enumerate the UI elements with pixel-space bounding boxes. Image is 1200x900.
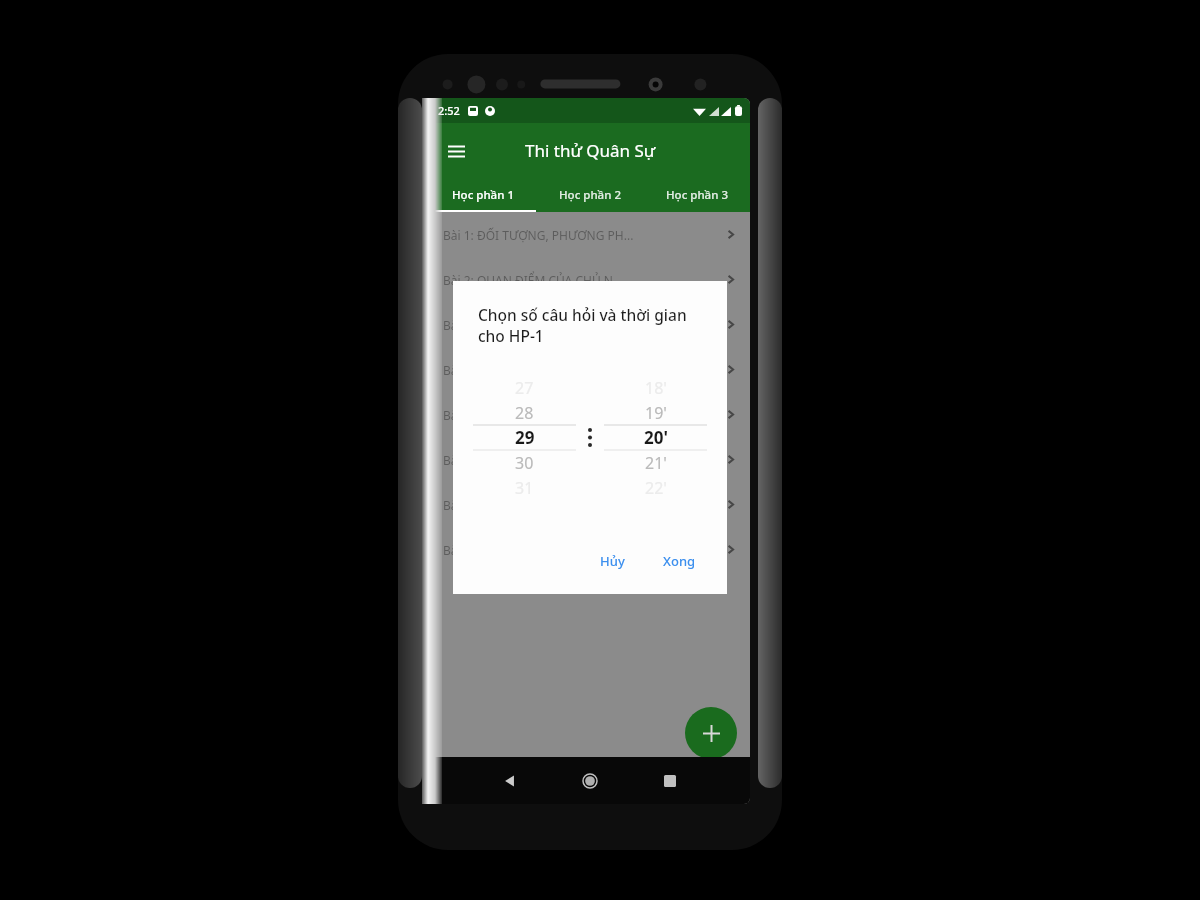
- staticText: 2:52: [438, 103, 460, 118]
- button[interactable]: Học phần 3: [643, 178, 750, 212]
- button[interactable]: Bài 3: XÂY DỰNG NỀN QUỐC P...: [430, 302, 750, 347]
- button[interactable]: Back: [470, 757, 550, 804]
- button[interactable]: Học phần 2: [536, 178, 643, 212]
- staticText: 21': [645, 452, 667, 474]
- staticText: Bài 3: XÂY DỰNG NỀN QUỐC P...: [443, 317, 622, 333]
- button[interactable]: Bài 8: PHÒNG CHỐNG CHIẾN...: [430, 527, 750, 572]
- staticText: 30: [515, 452, 534, 474]
- button[interactable]: Bài 6: KẾT HỢP PHÁT TRIỂN...: [430, 437, 750, 482]
- button[interactable]: Bài 5: XÂY DỰNG LỰC LƯỢNG...: [430, 392, 750, 437]
- button[interactable]: Open navigation menu: [436, 131, 476, 171]
- staticText: 22': [645, 477, 667, 499]
- staticText: Hủy: [600, 552, 625, 570]
- button[interactable]: Add: [685, 707, 737, 759]
- staticText: 19': [645, 402, 667, 424]
- button[interactable]: Xong: [650, 544, 709, 578]
- staticText: Xong: [663, 552, 696, 570]
- button[interactable]: Bài 1: ĐỐI TƯỢNG, PHƯƠNG PH...: [430, 212, 750, 257]
- staticText: 29: [515, 426, 535, 449]
- staticText: 18': [645, 377, 667, 399]
- staticText: Bài 5: XÂY DỰNG LỰC LƯỢNG...: [443, 407, 619, 423]
- button[interactable]: Bài 4: CHIẾN TRANH NHÂN D...: [430, 347, 750, 392]
- staticText: Bài 6: KẾT HỢP PHÁT TRIỂN...: [443, 452, 606, 468]
- staticText: Học phần 1: [452, 187, 514, 203]
- button[interactable]: Bài 2: QUAN ĐIỂM CỦA CHỦ N...: [430, 257, 750, 302]
- staticText: 27: [515, 377, 534, 399]
- button[interactable]: Home: [550, 757, 630, 804]
- staticText: Bài 7: NGHỆ THUẬT QUÂN SỰ...: [443, 497, 618, 513]
- staticText: Bài 4: CHIẾN TRANH NHÂN D...: [443, 362, 616, 378]
- staticText: Bài 2: QUAN ĐIỂM CỦA CHỦ N...: [443, 272, 623, 288]
- staticText: 31: [515, 477, 534, 499]
- staticText: Học phần 3: [666, 187, 728, 203]
- button[interactable]: Học phần 1: [430, 178, 536, 212]
- staticText: Chọn số câu hỏi và thời gian cho HP-1: [478, 304, 702, 346]
- staticText: Thi thử Quân Sự: [525, 139, 656, 162]
- staticText: Bài 8: PHÒNG CHỐNG CHIẾN...: [443, 542, 617, 558]
- staticText: Học phần 2: [559, 187, 621, 203]
- button[interactable]: Hủy: [587, 544, 638, 578]
- staticText: 20': [644, 426, 668, 449]
- button[interactable]: Bài 7: NGHỆ THUẬT QUÂN SỰ...: [430, 482, 750, 527]
- staticText: Bài 1: ĐỐI TƯỢNG, PHƯƠNG PH...: [443, 227, 634, 243]
- staticText: 28: [515, 402, 534, 424]
- button[interactable]: Recent apps: [630, 757, 710, 804]
